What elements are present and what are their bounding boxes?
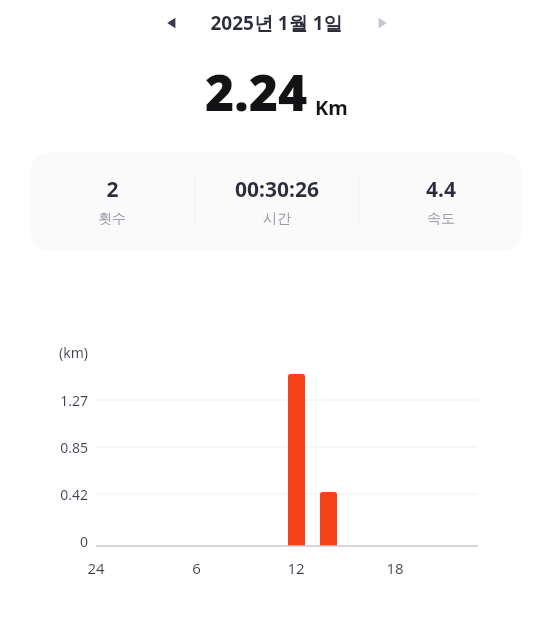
staticText: 횟수 bbox=[98, 210, 126, 228]
staticText: 0 bbox=[79, 532, 88, 551]
staticText: 4.4 bbox=[426, 175, 456, 204]
staticText: 0.85 bbox=[60, 438, 88, 457]
staticText: 0.42 bbox=[60, 485, 88, 504]
staticText: Km bbox=[315, 94, 348, 121]
button[interactable]: 2 bbox=[30, 152, 522, 251]
staticText: 00:30:26 bbox=[235, 175, 319, 204]
staticText: 2.24 bbox=[205, 58, 308, 126]
button[interactable]: 2 bbox=[30, 152, 194, 251]
button[interactable]: 4.4 bbox=[359, 152, 522, 251]
staticText: 2 bbox=[106, 175, 119, 204]
staticText: 1.27 bbox=[60, 391, 88, 410]
staticText: 6 bbox=[192, 558, 201, 578]
button[interactable]: Next day bbox=[368, 9, 396, 37]
staticText: 2025년 1월 1일 bbox=[210, 10, 343, 36]
button[interactable]: Previous day bbox=[158, 9, 186, 37]
staticText: 속도 bbox=[427, 210, 455, 228]
button[interactable]: 00:30:26 bbox=[195, 152, 358, 251]
button[interactable]: 2025년 1월 1일 bbox=[210, 10, 343, 36]
staticText: 24 bbox=[87, 558, 105, 578]
staticText: 시간 bbox=[263, 210, 291, 228]
staticText: 12 bbox=[287, 558, 305, 578]
staticText: (km) bbox=[59, 343, 88, 362]
staticText: 18 bbox=[386, 558, 404, 578]
